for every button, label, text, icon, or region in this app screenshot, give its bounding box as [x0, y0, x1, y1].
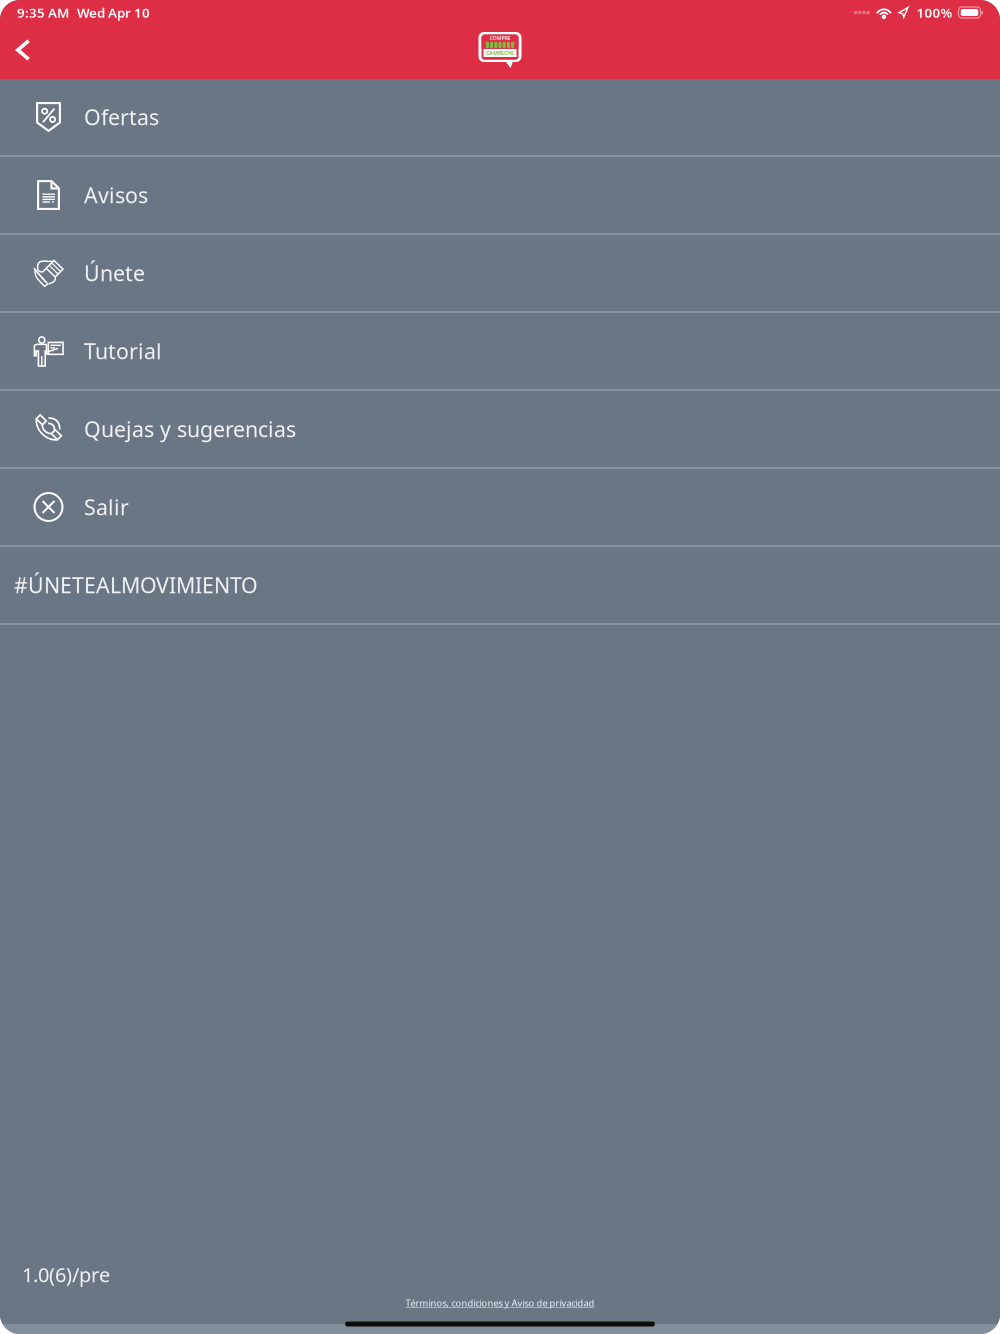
staticText: 100%	[916, 4, 952, 21]
staticText: 9:35 AM	[17, 4, 69, 21]
staticText: COMPRE	[489, 34, 510, 42]
staticText: Avisos	[84, 181, 148, 209]
staticText: Wed Apr 10	[77, 4, 150, 21]
staticText: 1.0(6)/pre	[22, 1261, 110, 1288]
staticText: CAMPECHE	[486, 49, 514, 57]
staticText: Tutorial	[84, 337, 162, 365]
staticText: Quejas y sugerencias	[84, 415, 296, 443]
button[interactable]: Únete	[0, 235, 1000, 313]
button[interactable]: Ofertas	[0, 79, 1000, 157]
staticText: Ofertas	[84, 103, 159, 131]
button[interactable]: Salir	[0, 469, 1000, 547]
staticText: #ÚNETEALMOVIMIENTO	[14, 571, 258, 599]
staticText: Términos, condiciones y Aviso de privaci…	[405, 1297, 594, 1309]
button[interactable]: Tutorial	[0, 313, 1000, 391]
staticText: Únete	[84, 259, 145, 287]
button[interactable]: Back	[0, 29, 48, 75]
button[interactable]: Términos, condiciones y Aviso de privaci…	[397, 1295, 602, 1311]
staticText: Salir	[84, 493, 129, 521]
button[interactable]: Quejas y sugerencias	[0, 391, 1000, 469]
button[interactable]: Avisos	[0, 157, 1000, 235]
